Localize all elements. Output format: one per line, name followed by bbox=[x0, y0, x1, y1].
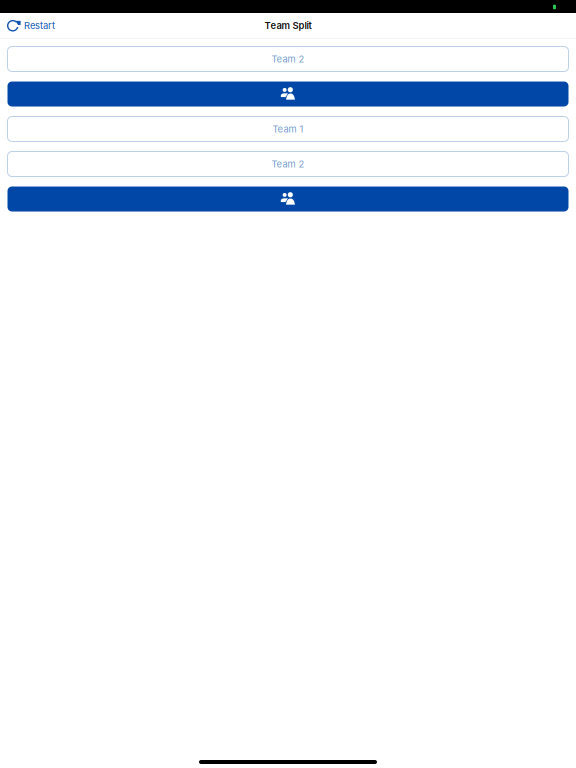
button[interactable]: Team 1 bbox=[7, 116, 568, 141]
button[interactable]: Assign player to team bbox=[7, 186, 568, 211]
staticText: Team 2 bbox=[271, 158, 304, 170]
button[interactable]: Team 2 bbox=[7, 151, 568, 176]
staticText: Restart bbox=[24, 20, 55, 31]
staticText: Team 2 bbox=[271, 53, 304, 65]
button[interactable]: Assign player to team bbox=[7, 81, 568, 106]
button[interactable]: Restart bbox=[0, 13, 61, 37]
staticText: Team Split bbox=[264, 20, 311, 31]
button[interactable]: Team 2 bbox=[7, 46, 568, 71]
staticText: Team 1 bbox=[272, 123, 303, 135]
